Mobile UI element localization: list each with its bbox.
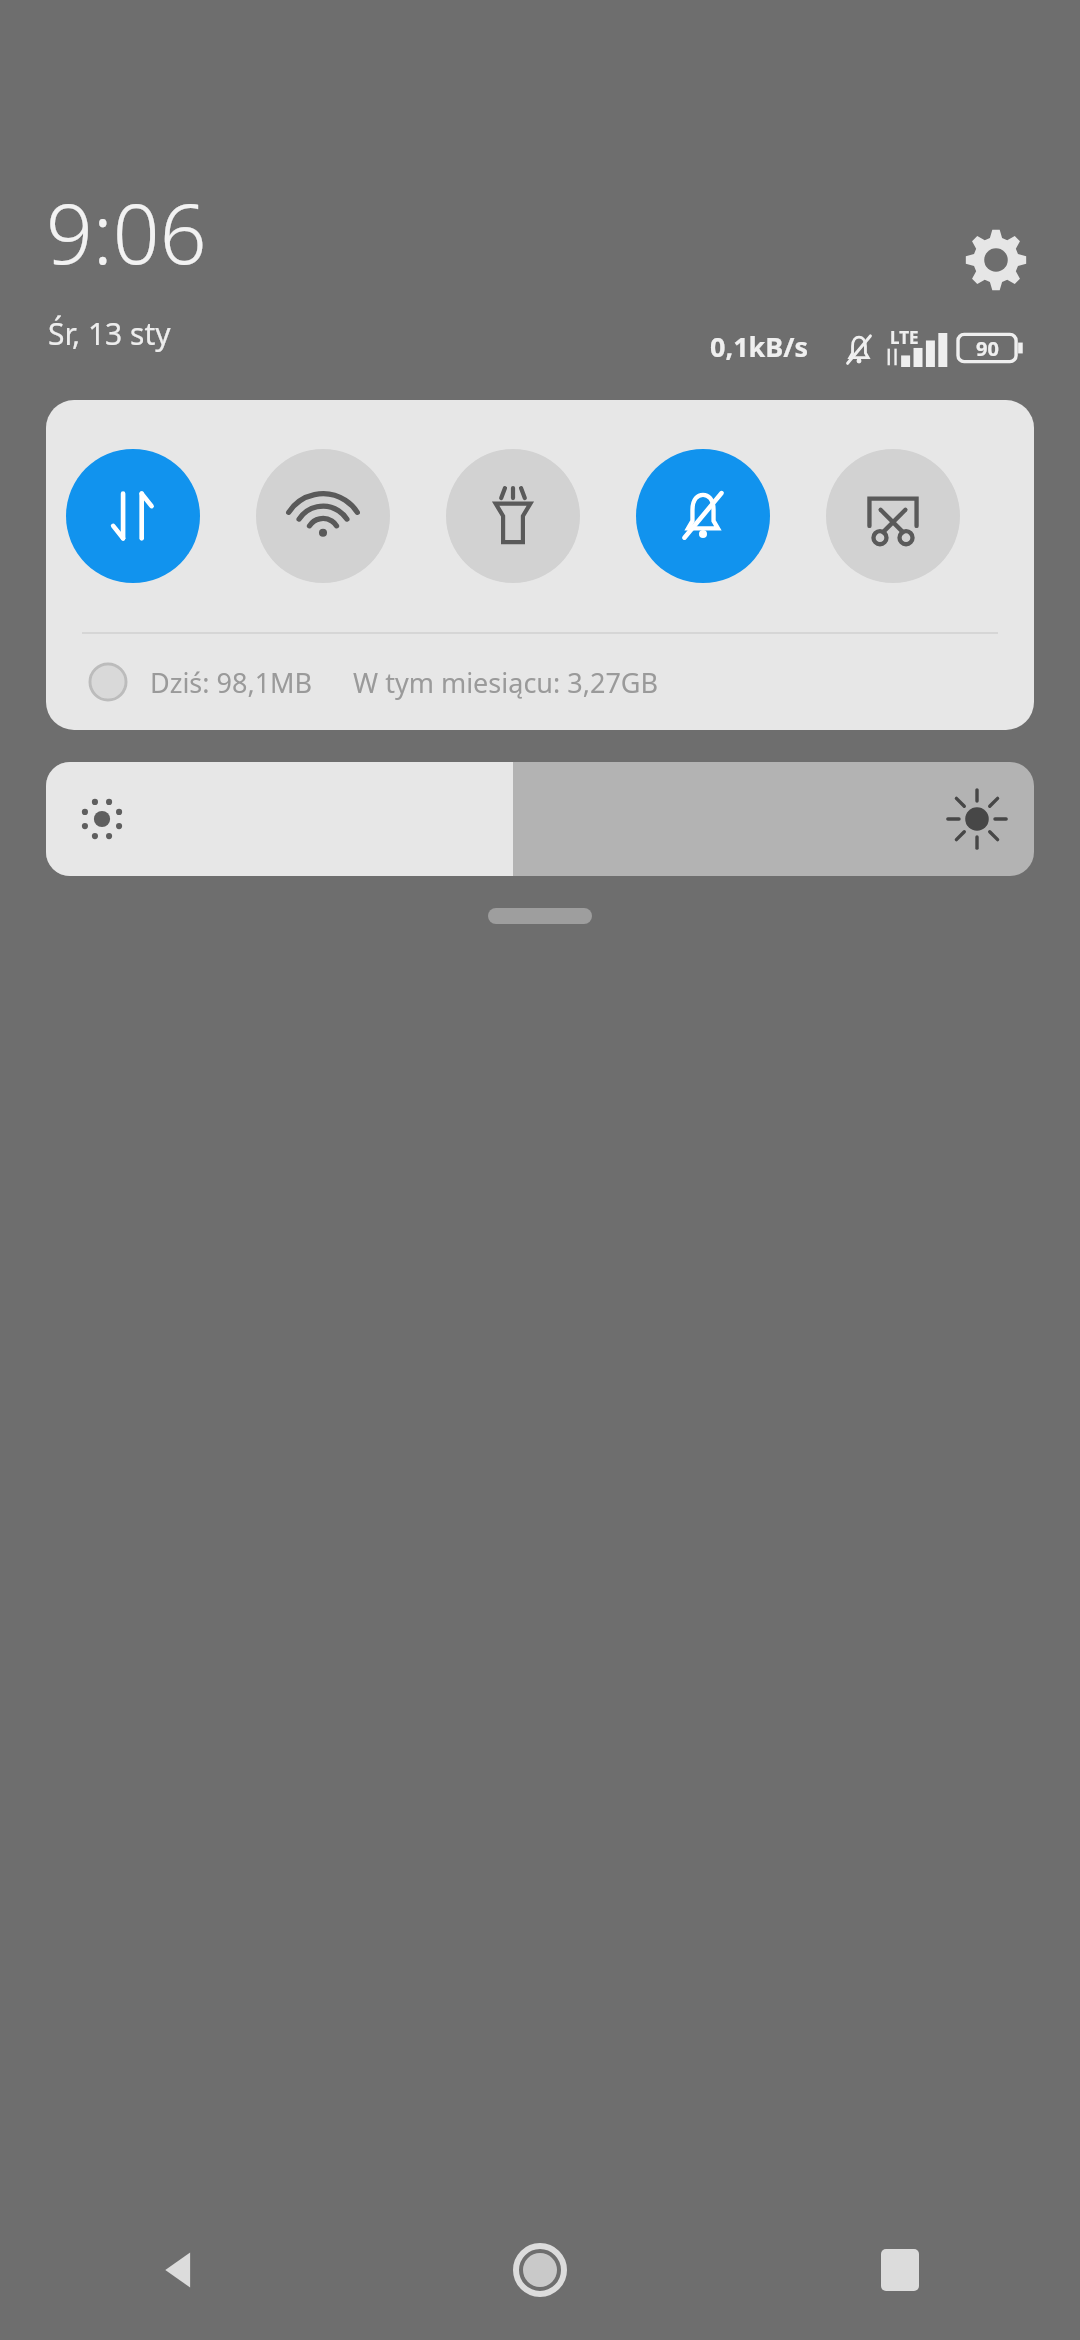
staticText: Dziś: 98,1MB — [150, 664, 313, 701]
staticText: 0,1kB/s — [710, 328, 809, 365]
staticText: W tym miesiącu: 3,27GB — [353, 664, 659, 701]
button[interactable]: Brightness — [46, 762, 1034, 876]
button[interactable]: Mobile data — [66, 449, 200, 583]
staticText: LTE — [890, 326, 919, 349]
staticText: 90 — [976, 335, 999, 362]
button[interactable]: Screenshot — [826, 449, 960, 583]
button[interactable]: Dziś: 98,1MB — [46, 634, 1034, 730]
button[interactable]: Do not disturb — [636, 449, 770, 583]
button[interactable]: Settings — [958, 222, 1034, 298]
staticText: Śr, 13 sty — [48, 313, 171, 354]
staticText: 9:06 — [46, 176, 207, 276]
button[interactable]: Home — [360, 2200, 720, 2340]
button[interactable]: Recents — [720, 2200, 1080, 2340]
button[interactable]: Expand quick settings — [488, 908, 592, 924]
button[interactable]: Back — [0, 2200, 360, 2340]
button[interactable]: Wi-Fi — [256, 449, 390, 583]
button[interactable]: Flashlight — [446, 449, 580, 583]
